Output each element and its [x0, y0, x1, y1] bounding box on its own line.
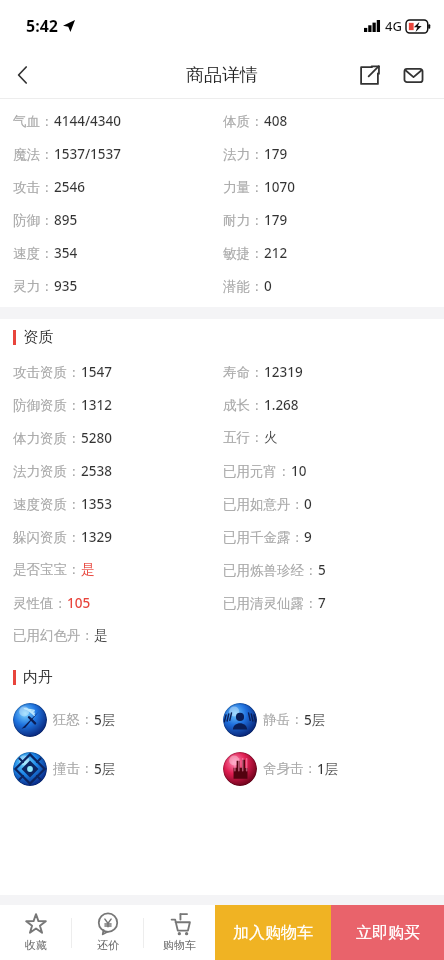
staticText: 1547 — [81, 363, 112, 381]
staticText: 速度资质： — [13, 496, 81, 513]
staticText: 已用幻色丹： — [13, 627, 94, 644]
staticText: 加入购物车 — [233, 923, 313, 943]
staticText: 气血： — [13, 113, 54, 130]
staticText: 成长： — [223, 397, 264, 414]
staticText: 购物车 — [163, 938, 196, 952]
staticText: 法力： — [223, 146, 264, 163]
staticText: 收藏 — [25, 938, 47, 952]
staticText: 魔法： — [13, 146, 54, 163]
staticText: 潜能： — [223, 278, 264, 295]
button[interactable]: 舍身击： — [223, 744, 339, 793]
staticText: 灵力： — [13, 278, 54, 295]
staticText: 179 — [264, 145, 288, 163]
staticText: 5层 — [304, 711, 326, 729]
staticText: 5280 — [81, 429, 112, 447]
staticText: 耐力： — [223, 212, 264, 229]
staticText: 内丹 — [23, 668, 53, 687]
staticText: 5层 — [94, 760, 116, 778]
staticText: 力量： — [223, 179, 264, 196]
button[interactable]: 立即购买 — [331, 905, 444, 960]
staticText: 立即购买 — [356, 923, 420, 943]
staticText: 1537/1537 — [54, 145, 121, 163]
staticText: 2546 — [54, 178, 85, 196]
staticText: 敏捷： — [223, 245, 264, 262]
staticText: 攻击资质： — [13, 364, 81, 381]
staticText: 商品详情 — [186, 64, 258, 87]
staticText: 资质 — [23, 328, 53, 347]
staticText: 212 — [264, 244, 288, 262]
button[interactable]: 加入购物车 — [215, 905, 331, 960]
staticText: 寿命： — [223, 364, 264, 381]
staticText: 撞击： — [53, 760, 94, 777]
staticText: 攻击： — [13, 179, 54, 196]
staticText: 2538 — [81, 462, 112, 480]
button[interactable]: 撞击： — [13, 744, 116, 793]
staticText: 1312 — [81, 396, 112, 414]
staticText: 12319 — [264, 363, 303, 381]
staticText: 408 — [264, 112, 288, 130]
staticText: 已用炼兽珍经： — [223, 562, 318, 579]
staticText: 5层 — [94, 711, 116, 729]
staticText: 狂怒： — [53, 711, 94, 728]
staticText: 1070 — [264, 178, 295, 196]
staticText: 0 — [264, 277, 272, 295]
staticText: 1.268 — [264, 396, 299, 414]
button[interactable]: 狂怒： — [13, 695, 116, 744]
staticText: 体质： — [223, 113, 264, 130]
staticText: 179 — [264, 211, 288, 229]
staticText: 速度： — [13, 245, 54, 262]
staticText: 已用如意丹： — [223, 496, 304, 513]
staticText: 354 — [54, 244, 78, 262]
button[interactable]: 收藏 — [0, 905, 71, 960]
staticText: 5 — [318, 561, 326, 579]
staticText: 是 — [94, 627, 108, 644]
staticText: 灵性值： — [13, 595, 67, 612]
button[interactable]: 静岳： — [223, 695, 326, 744]
staticText: 防御： — [13, 212, 54, 229]
staticText: 防御资质： — [13, 397, 81, 414]
button[interactable]: 分享 — [347, 53, 391, 97]
staticText: 是否宝宝： — [13, 561, 81, 578]
staticText: 9 — [304, 528, 312, 546]
staticText: 火 — [264, 429, 278, 446]
staticText: 还价 — [97, 938, 119, 952]
button[interactable]: 还价 — [72, 905, 143, 960]
staticText: 舍身击： — [263, 760, 317, 777]
staticText: 躲闪资质： — [13, 529, 81, 546]
staticText: 105 — [67, 594, 91, 612]
staticText: 5:42 — [26, 15, 58, 37]
staticText: 已用清灵仙露： — [223, 595, 318, 612]
staticText: 4G — [385, 17, 402, 35]
staticText: 已用千金露： — [223, 529, 304, 546]
button[interactable]: 消息 — [391, 53, 435, 97]
button[interactable]: 返回 — [0, 52, 46, 98]
button[interactable]: 购物车 — [144, 905, 215, 960]
staticText: 10 — [291, 462, 307, 480]
staticText: 已用元宵： — [223, 463, 291, 480]
staticText: 五行： — [223, 429, 264, 446]
staticText: 7 — [318, 594, 326, 612]
staticText: 1层 — [317, 760, 339, 778]
staticText: 是 — [81, 561, 95, 578]
staticText: 935 — [54, 277, 78, 295]
staticText: 法力资质： — [13, 463, 81, 480]
staticText: 1329 — [81, 528, 112, 546]
staticText: 4144/4340 — [54, 112, 121, 130]
staticText: 895 — [54, 211, 78, 229]
staticText: 1353 — [81, 495, 112, 513]
staticText: 体力资质： — [13, 430, 81, 447]
staticText: 静岳： — [263, 711, 304, 728]
staticText: 0 — [304, 495, 312, 513]
